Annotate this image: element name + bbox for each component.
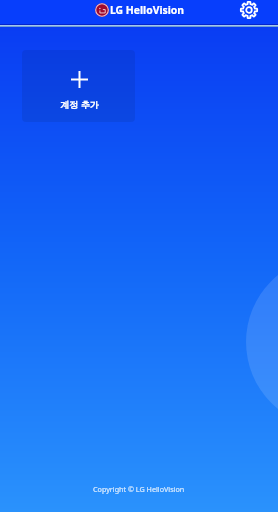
staticText: LG HelloVision <box>110 3 185 17</box>
button[interactable]: 계정 추가 <box>22 50 135 122</box>
button[interactable]: Settings <box>240 1 258 19</box>
staticText: 계정 추가 <box>60 98 99 110</box>
staticText: Copyright © LG HelloVision <box>93 484 185 494</box>
